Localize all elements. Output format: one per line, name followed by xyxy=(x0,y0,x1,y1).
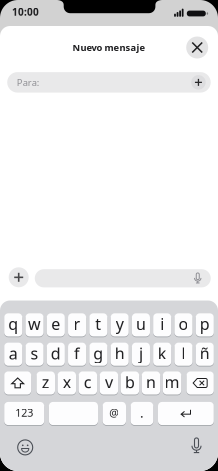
button[interactable]: h xyxy=(111,342,129,366)
staticText: a xyxy=(9,343,18,364)
button[interactable]: g xyxy=(89,342,107,366)
staticText: o xyxy=(178,313,188,334)
staticText: 10:00 xyxy=(12,5,39,19)
staticText: t xyxy=(95,313,101,334)
button[interactable] xyxy=(17,439,34,456)
staticText: x xyxy=(63,371,71,393)
staticText: c xyxy=(84,371,92,393)
staticText: Nuevo mensaje xyxy=(72,41,145,54)
staticText: j xyxy=(139,343,143,364)
staticText: l xyxy=(181,343,185,364)
staticText: k xyxy=(158,343,167,364)
staticText: r xyxy=(74,313,81,334)
button[interactable]: r xyxy=(68,313,86,337)
staticText: d xyxy=(51,343,61,364)
staticText: f xyxy=(74,343,80,364)
staticText: u xyxy=(136,313,146,334)
staticText: p xyxy=(200,313,210,334)
staticText: 123 xyxy=(15,405,33,420)
button[interactable] xyxy=(186,36,208,58)
button[interactable] xyxy=(35,269,211,287)
button[interactable]: ñ xyxy=(196,342,214,366)
staticText: m xyxy=(165,371,180,393)
button[interactable]: c xyxy=(79,371,97,395)
button[interactable]: v xyxy=(100,371,118,395)
button[interactable]: s xyxy=(25,342,44,366)
staticText: Para: xyxy=(17,76,40,89)
staticText: z xyxy=(42,371,50,393)
button[interactable]: b xyxy=(121,371,139,395)
button[interactable]: l xyxy=(174,342,192,366)
button[interactable] xyxy=(190,437,202,455)
button[interactable] xyxy=(186,371,214,395)
button[interactable]: o xyxy=(174,313,192,337)
button[interactable]: y xyxy=(111,313,129,337)
button[interactable]: w xyxy=(25,313,44,337)
staticText: h xyxy=(115,343,125,364)
button[interactable]: @ xyxy=(103,401,126,425)
button[interactable]: x xyxy=(57,371,76,395)
button[interactable]: e xyxy=(47,313,65,337)
staticText: q xyxy=(8,313,18,334)
button[interactable]: j xyxy=(132,342,150,366)
button[interactable]: 123 xyxy=(4,401,44,425)
button[interactable]: z xyxy=(36,371,55,395)
button[interactable]: p xyxy=(196,313,214,337)
button[interactable]: . xyxy=(131,401,153,425)
button[interactable]: q xyxy=(4,313,22,337)
staticText: ñ xyxy=(200,343,210,364)
button[interactable]: f xyxy=(68,342,86,366)
button[interactable]: k xyxy=(153,342,171,366)
button[interactable]: Para: xyxy=(7,72,211,93)
button[interactable]: m xyxy=(163,371,181,395)
button[interactable] xyxy=(49,401,98,425)
button[interactable]: i xyxy=(153,313,171,337)
staticText: y xyxy=(116,313,124,334)
staticText: e xyxy=(51,313,60,334)
button[interactable]: d xyxy=(47,342,65,366)
button[interactable]: t xyxy=(89,313,107,337)
button[interactable] xyxy=(158,401,214,425)
staticText: v xyxy=(105,371,113,393)
staticText: s xyxy=(30,343,38,364)
button[interactable]: u xyxy=(132,313,150,337)
staticText: b xyxy=(125,371,135,393)
button[interactable]: a xyxy=(4,342,22,366)
staticText: @ xyxy=(109,405,119,420)
staticText: g xyxy=(93,343,103,364)
button[interactable] xyxy=(9,267,29,287)
staticText: i xyxy=(160,313,164,334)
staticText: . xyxy=(140,404,144,421)
button[interactable] xyxy=(4,371,31,395)
button[interactable]: n xyxy=(142,371,160,395)
staticText: n xyxy=(146,371,156,393)
staticText: w xyxy=(28,313,41,334)
